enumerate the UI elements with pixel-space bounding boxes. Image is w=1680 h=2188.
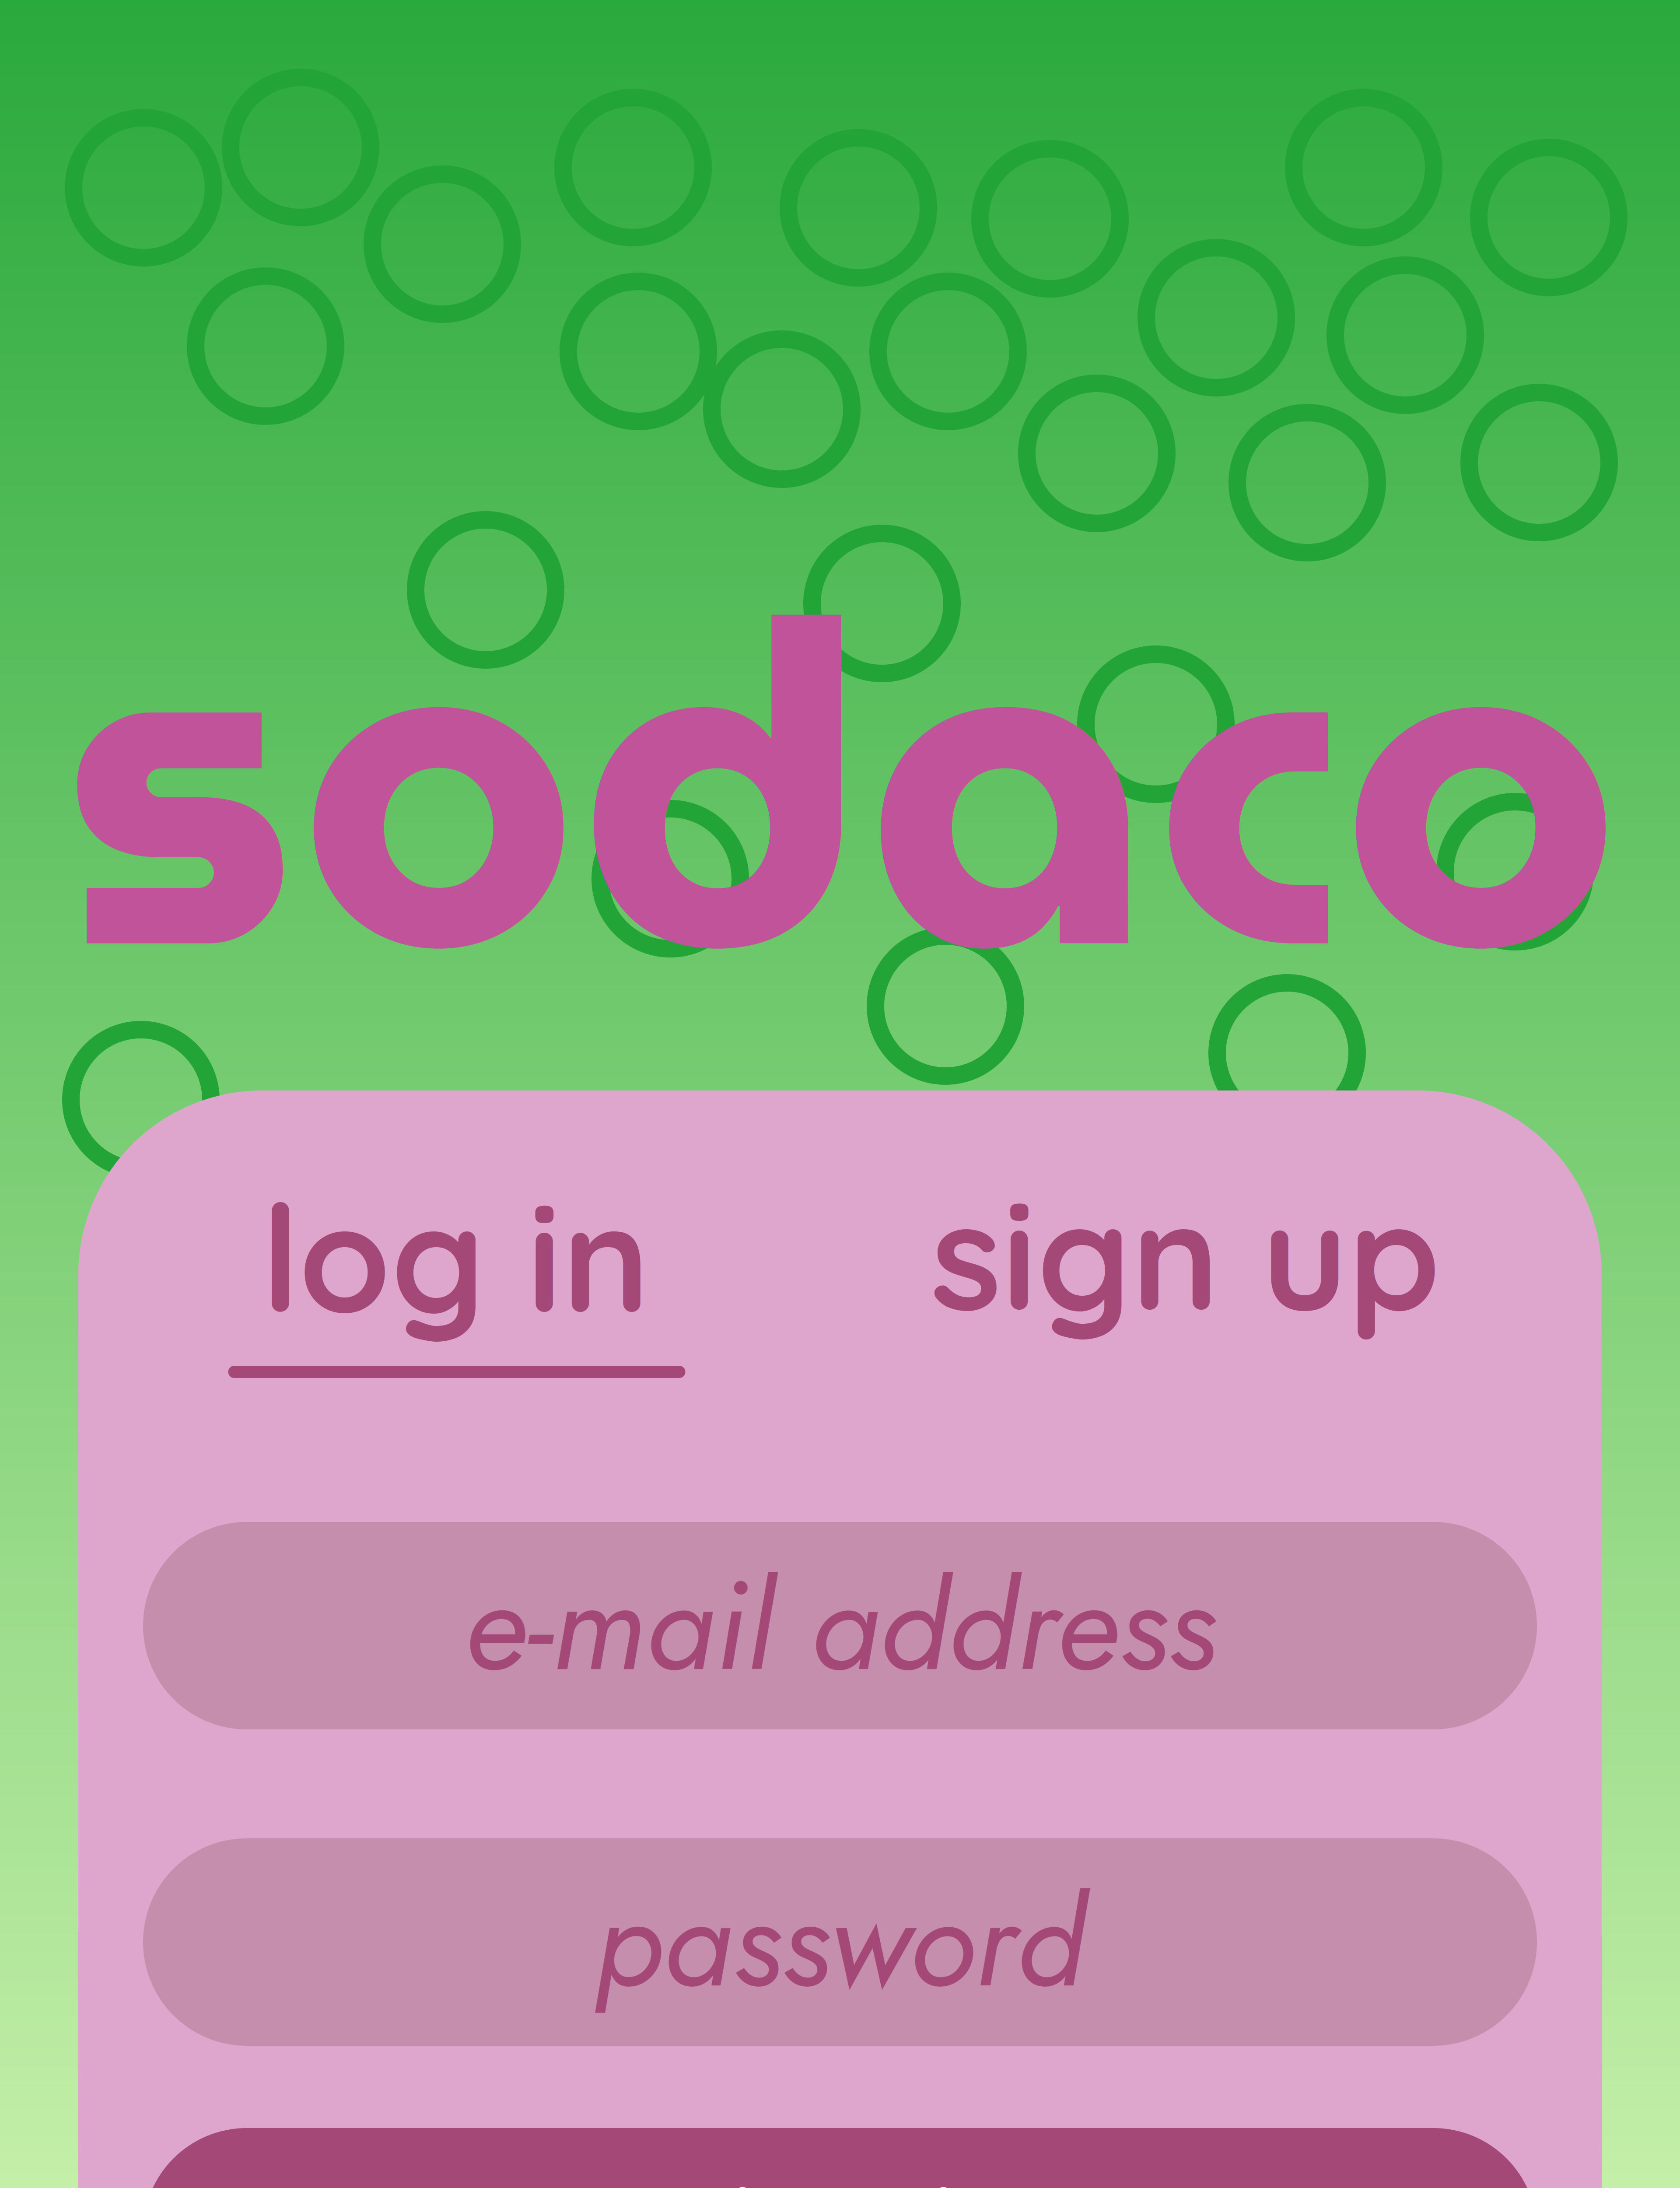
staticText: e-mail address [464,1536,1216,1715]
staticText: log in [261,1164,650,1349]
button[interactable]: sign in [143,2128,1537,2188]
staticText: password [595,1852,1085,2032]
button[interactable]: e-mail address [143,1522,1537,1729]
button[interactable]: sign up [931,1162,1441,1347]
button[interactable]: password [143,1838,1537,2046]
staticText: sign in [668,2142,1012,2188]
staticText: sign up [931,1162,1441,1347]
staticText: sodaco [60,428,1621,1144]
button[interactable]: log in [209,1188,705,1393]
